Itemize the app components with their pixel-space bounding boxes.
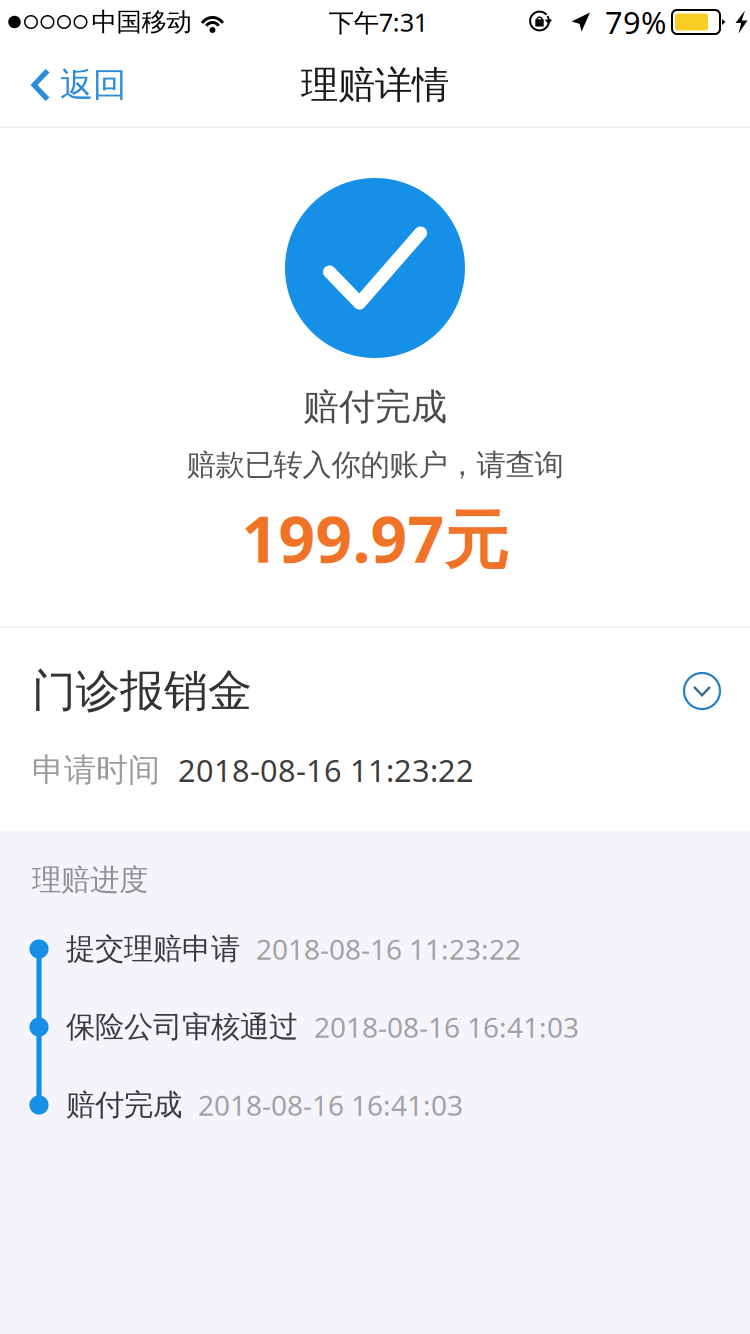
staticText: 提交理赔申请 <box>66 931 240 967</box>
staticText: 2018-08-16 11:23:22 <box>256 930 521 968</box>
staticText: 赔付完成 <box>303 385 447 429</box>
button[interactable]: 展开 <box>682 671 722 711</box>
staticText: 2018-08-16 16:41:03 <box>198 1086 463 1124</box>
staticText: 申请时间 <box>32 750 160 790</box>
staticText: 返回 <box>60 64 126 105</box>
staticText: 2018-08-16 16:41:03 <box>314 1008 579 1046</box>
staticText: 赔付完成 <box>66 1087 182 1123</box>
staticText: 199.97元 <box>241 495 508 580</box>
staticText: 理赔进度 <box>32 862 148 898</box>
staticText: 79% <box>605 2 666 42</box>
staticText: 下午7:31 <box>329 5 428 39</box>
staticText: 赔款已转入你的账户，请查询 <box>186 447 563 483</box>
staticText: 中国移动 <box>91 6 191 37</box>
staticText: 2018-08-16 11:23:22 <box>178 750 474 790</box>
staticText: 保险公司审核通过 <box>66 1009 298 1045</box>
staticText: 理赔详情 <box>301 62 449 108</box>
staticText: 门诊报销金 <box>32 664 252 718</box>
button[interactable]: 返回 <box>0 47 142 123</box>
